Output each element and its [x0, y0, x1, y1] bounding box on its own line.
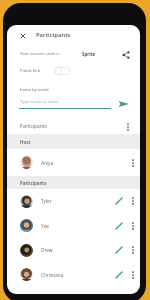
staticText: Tyler — [41, 198, 52, 204]
staticText: Participants — [20, 123, 47, 130]
button[interactable]: Options for Yoe — [127, 220, 139, 232]
button[interactable]: Share — [119, 48, 132, 61]
staticText: Invite by email — [20, 87, 49, 93]
staticText: Yoe — [41, 223, 49, 229]
staticText: Drew — [41, 247, 53, 253]
staticText: Aniya — [41, 160, 54, 166]
button[interactable]: Yoe — [7, 213, 140, 238]
button[interactable]: Aniya — [7, 149, 140, 176]
staticText: Host — [20, 139, 31, 145]
button[interactable]: Edit Drew — [113, 244, 125, 256]
button[interactable]: Drew — [7, 238, 140, 262]
staticText: Type email or name — [20, 99, 59, 105]
button[interactable]: Close — [14, 27, 31, 44]
button[interactable]: Send invite — [117, 97, 130, 110]
button[interactable]: Options for Christiana — [127, 269, 139, 281]
button[interactable]: Edit Yoe — [113, 220, 125, 232]
button[interactable]: Options for Tyler — [127, 195, 139, 207]
staticText: Public link — [20, 68, 40, 74]
button[interactable]: Options for Drew — [127, 244, 139, 256]
button[interactable]: Edit Christiana — [113, 269, 125, 281]
button[interactable]: Edit Tyler — [113, 195, 125, 207]
staticText: Participants — [36, 31, 71, 39]
button[interactable]: Options for Aniya — [127, 157, 139, 169]
staticText: Christiana — [41, 272, 64, 278]
button[interactable]: Participant options — [121, 120, 134, 133]
button[interactable]: Tyler — [7, 189, 140, 213]
staticText: Your session code is — [20, 51, 60, 57]
button[interactable]: Toggle public link — [54, 66, 70, 76]
staticText: Participants — [20, 180, 47, 186]
staticText: Sprite — [82, 51, 95, 57]
button[interactable]: Christiana — [7, 262, 140, 287]
